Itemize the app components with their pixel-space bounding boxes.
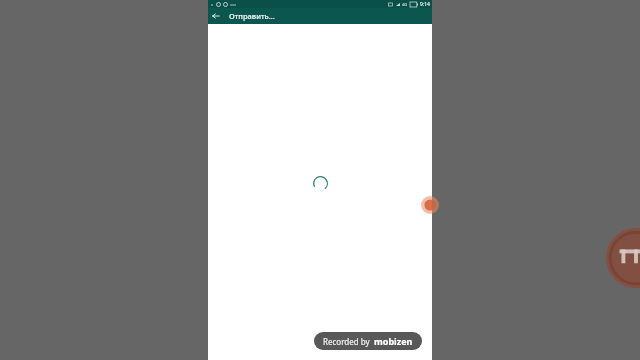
button[interactable]: Back xyxy=(208,8,224,24)
staticText: Отправить... xyxy=(229,11,275,21)
staticText: 9:14 xyxy=(420,1,430,8)
button[interactable]: Recorded by xyxy=(314,332,422,350)
staticText: Recorded by xyxy=(323,336,370,347)
staticText: mobizen xyxy=(374,335,413,347)
staticText: 4G xyxy=(402,2,408,7)
button[interactable]: Mobizen recorder xyxy=(421,196,439,214)
